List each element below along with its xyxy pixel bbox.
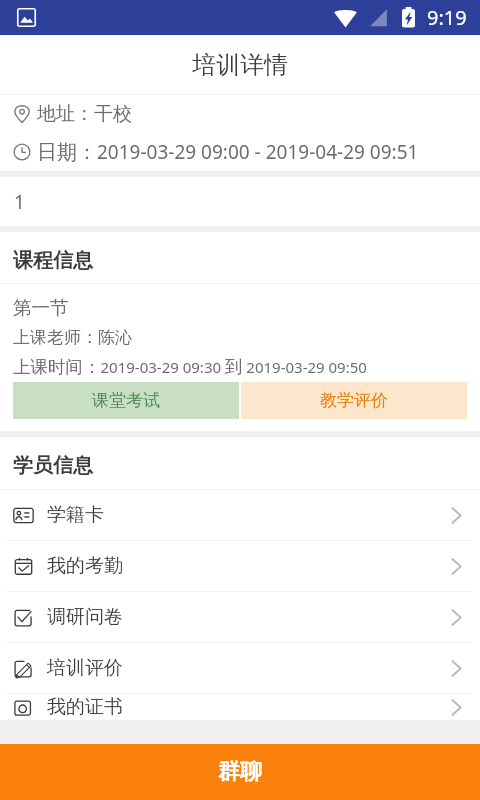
other: Screenshot bbox=[17, 8, 36, 27]
button[interactable]: 课堂考试 bbox=[13, 382, 239, 419]
button[interactable]: 教学评价 bbox=[241, 382, 467, 419]
staticText: 9:19 bbox=[427, 4, 467, 31]
button[interactable]: 我的证书 bbox=[0, 682, 480, 720]
other: 培训评价 bbox=[13, 658, 34, 679]
button[interactable]: 群聊 bbox=[0, 744, 480, 800]
other: 调研问卷 bbox=[13, 607, 34, 628]
staticText: 日期：2019-03-29 09:00 - 2019-04-29 09:51 bbox=[37, 139, 419, 165]
staticText: 培训详情 bbox=[192, 50, 288, 80]
staticText: 第一节 bbox=[13, 296, 69, 319]
button[interactable]: 我的考勤 bbox=[0, 541, 480, 591]
button[interactable]: 调研问卷 bbox=[0, 592, 480, 642]
staticText: 课程信息 bbox=[13, 248, 93, 273]
staticText: 上课老师：陈沁 bbox=[13, 327, 132, 348]
staticText: 群聊 bbox=[218, 758, 262, 786]
staticText: 上课时间：2019-03-29 09:30 到 2019-03-29 09:50 bbox=[13, 356, 367, 378]
button[interactable]: 学籍卡 bbox=[0, 490, 480, 540]
staticText: 调研问卷 bbox=[47, 605, 123, 629]
staticText: 教学评价 bbox=[320, 390, 388, 411]
staticText: 学员信息 bbox=[13, 453, 93, 478]
staticText: 培训评价 bbox=[47, 656, 123, 680]
staticText: 课堂考试 bbox=[92, 390, 160, 411]
other: 我的考勤 bbox=[13, 556, 34, 577]
other: 学籍卡 bbox=[13, 505, 34, 526]
staticText: 学籍卡 bbox=[47, 503, 104, 527]
staticText: 我的证书 bbox=[47, 695, 123, 719]
button[interactable]: 培训评价 bbox=[0, 643, 480, 693]
staticText: 我的考勤 bbox=[47, 554, 123, 578]
other: 我的证书 bbox=[13, 697, 34, 718]
staticText: 1 bbox=[14, 189, 25, 215]
staticText: 地址：干校 bbox=[37, 102, 132, 126]
